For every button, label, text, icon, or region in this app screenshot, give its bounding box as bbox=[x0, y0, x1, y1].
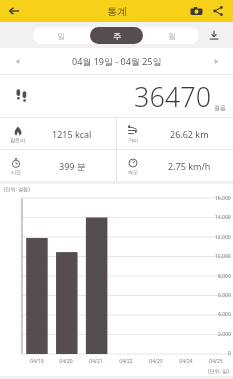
button[interactable]: 칼로리 bbox=[0, 118, 116, 149]
staticText: 2.75 km/h bbox=[168, 160, 211, 172]
staticText: 속도 bbox=[128, 169, 138, 175]
button[interactable]: Back bbox=[4, 1, 24, 21]
button[interactable]: 일 bbox=[34, 27, 88, 44]
staticText: 0 bbox=[228, 350, 231, 357]
staticText: 거리 bbox=[128, 137, 138, 143]
button[interactable]: Next period bbox=[207, 52, 225, 70]
staticText: 14,000 bbox=[215, 214, 231, 221]
staticText: 12,000 bbox=[215, 234, 231, 241]
staticText: 04/20 bbox=[59, 358, 73, 365]
button[interactable]: 주 bbox=[90, 27, 143, 44]
staticText: 04/23 bbox=[149, 358, 163, 365]
staticText: 04/25 bbox=[209, 358, 223, 365]
staticText: 36470 bbox=[134, 78, 212, 115]
staticText: 칼로리 bbox=[10, 137, 25, 143]
staticText: 26.62 km bbox=[170, 128, 209, 140]
staticText: 04/21 bbox=[89, 358, 103, 365]
staticText: 399 분 bbox=[59, 160, 86, 172]
button[interactable]: Share bbox=[208, 1, 228, 21]
staticText: 2,000 bbox=[218, 331, 231, 338]
staticText: 6,000 bbox=[218, 292, 231, 299]
staticText: 8,000 bbox=[218, 273, 231, 280]
button[interactable]: Camera bbox=[186, 1, 206, 21]
staticText: (단위: 걸음) bbox=[4, 186, 30, 193]
staticText: 16,000 bbox=[215, 195, 231, 202]
button[interactable]: 속도 bbox=[117, 150, 233, 181]
button[interactable]: Previous period bbox=[8, 52, 26, 70]
button[interactable]: 거리 bbox=[117, 118, 233, 149]
staticText: 시간 bbox=[11, 169, 21, 175]
staticText: 통계 bbox=[107, 5, 127, 18]
staticText: 걸음 bbox=[214, 104, 226, 112]
staticText: 04월 19일 - 04월 25일 bbox=[72, 55, 162, 67]
staticText: 10,000 bbox=[215, 253, 231, 260]
staticText: 월 bbox=[168, 31, 176, 41]
button[interactable]: 시간 bbox=[0, 150, 116, 181]
staticText: 일 bbox=[57, 31, 65, 41]
staticText: 04/22 bbox=[119, 358, 133, 365]
button[interactable]: Download bbox=[205, 26, 223, 44]
staticText: 04/24 bbox=[179, 358, 193, 365]
staticText: 주 bbox=[113, 31, 121, 41]
staticText: (단위: 일) bbox=[208, 368, 229, 375]
staticText: 04/19 bbox=[30, 358, 44, 365]
staticText: 1215 kcal bbox=[52, 128, 92, 140]
button[interactable]: 월 bbox=[145, 27, 198, 44]
staticText: 4,000 bbox=[218, 311, 231, 318]
other: Steps bbox=[12, 85, 34, 107]
